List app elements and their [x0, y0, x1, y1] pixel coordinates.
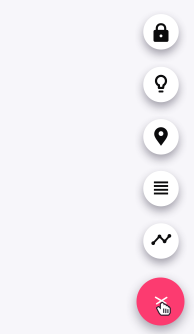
button[interactable]: Tap [136, 277, 184, 325]
button[interactable]: Lock [143, 14, 179, 50]
button[interactable]: Statistics [143, 223, 179, 259]
button[interactable]: Location [143, 119, 179, 155]
button[interactable]: Menu [143, 171, 179, 206]
button[interactable]: Tips [143, 67, 179, 102]
